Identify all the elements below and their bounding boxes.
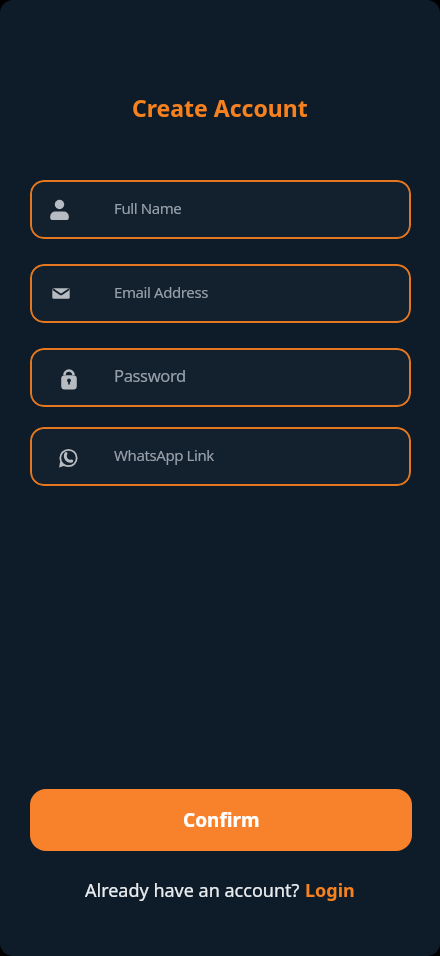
button[interactable]: WhatsApp Link — [30, 427, 411, 486]
button[interactable]: Full Name — [30, 180, 411, 239]
staticText: Already have an account? — [85, 878, 305, 903]
staticText: WhatsApp Link — [114, 445, 214, 465]
button[interactable]: Login — [305, 878, 355, 903]
staticText: Confirm — [183, 807, 260, 833]
button[interactable]: Password — [30, 348, 411, 407]
staticText: Email Address — [114, 282, 208, 302]
button[interactable]: Confirm — [30, 789, 412, 851]
button[interactable]: Email Address — [30, 264, 411, 323]
staticText: Create Account — [132, 92, 308, 123]
staticText: Full Name — [114, 198, 182, 218]
staticText: Password — [114, 364, 186, 387]
